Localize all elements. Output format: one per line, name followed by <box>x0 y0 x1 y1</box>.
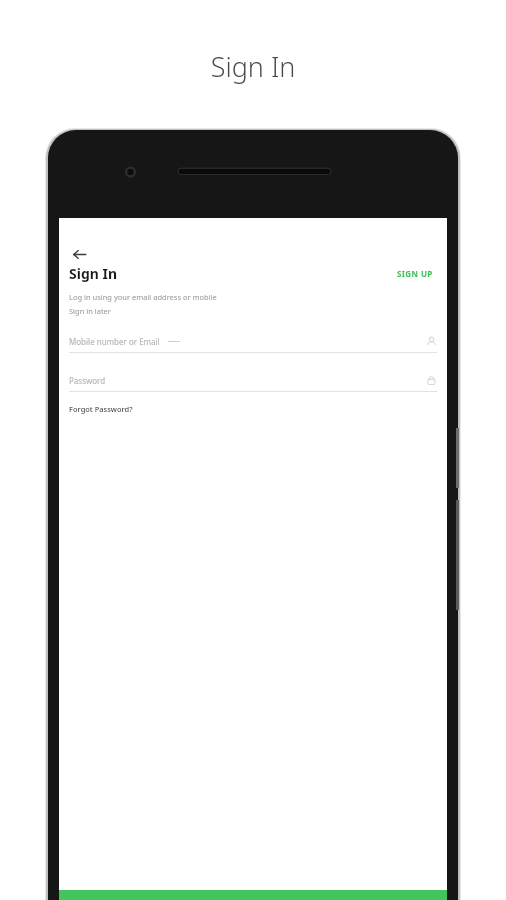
button[interactable]: Mobile number or Email <box>69 336 437 353</box>
button[interactable]: Forgot Password? <box>69 402 133 416</box>
staticText: Forgot Password? <box>69 404 133 414</box>
staticText: Sign In <box>69 264 118 283</box>
button[interactable]: Password <box>69 375 437 392</box>
button[interactable]: Back <box>63 238 95 270</box>
staticText: Mobile number or Email <box>69 336 160 347</box>
button[interactable]: Sign in later <box>69 306 111 316</box>
staticText: Password <box>69 375 106 386</box>
staticText: Sign In <box>0 48 506 85</box>
button[interactable]: SIGN UP <box>395 265 435 282</box>
staticText: SIGN UP <box>397 268 433 279</box>
staticText: Log in using your email address or mobil… <box>69 292 217 302</box>
staticText: Sign in later <box>69 306 111 316</box>
